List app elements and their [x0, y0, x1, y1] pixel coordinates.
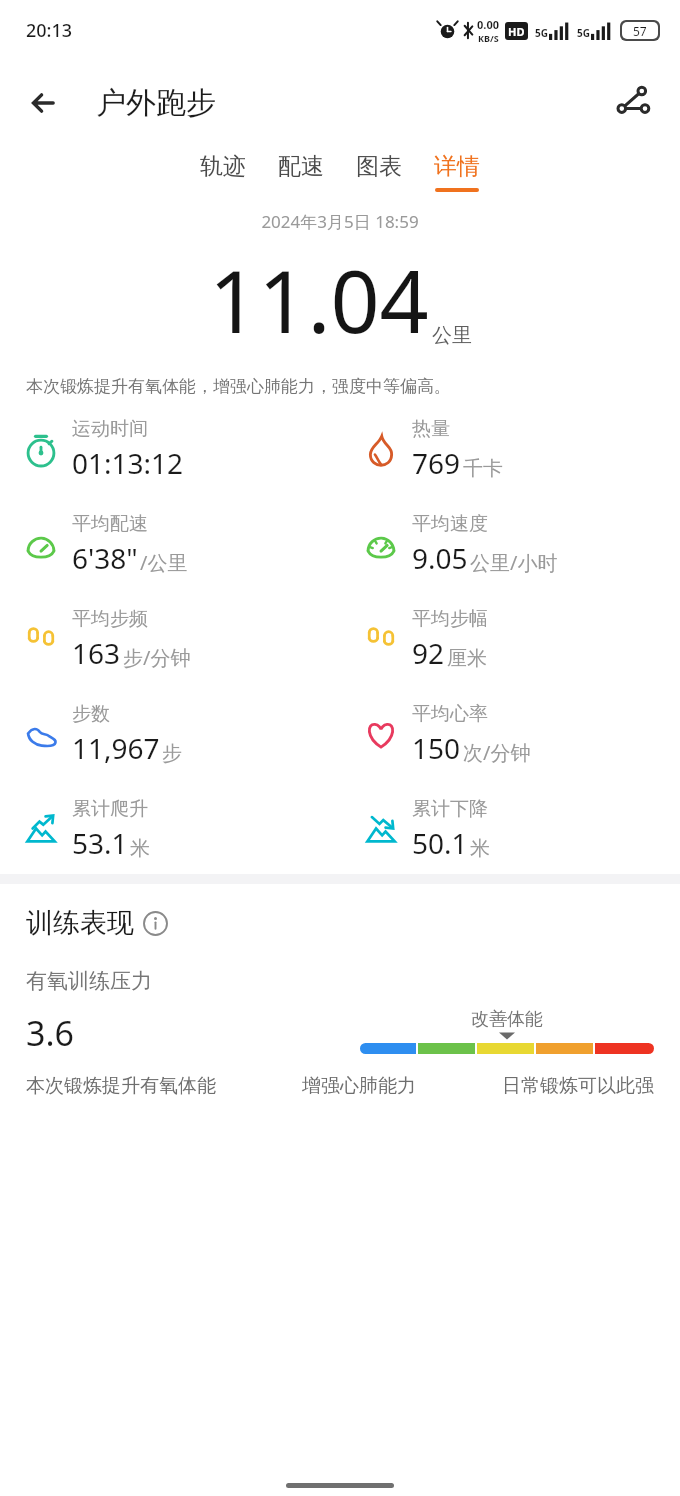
staticText: 5G [535, 26, 548, 40]
staticText: 3.6 [26, 1010, 75, 1056]
button[interactable]: 平均步频 [0, 605, 340, 674]
staticText: 热量 [412, 417, 450, 441]
button[interactable]: 轨迹 [184, 146, 262, 198]
staticText: 20:13 [26, 18, 73, 43]
button[interactable]: 详情 [418, 146, 496, 198]
staticText: 2024年3月5日 18:59 [0, 210, 680, 233]
button[interactable]: 步数 [0, 700, 340, 769]
button[interactable]: 累计下降 [340, 795, 680, 864]
staticText: 千卡 [463, 456, 503, 481]
button[interactable]: 累计爬升 [0, 795, 340, 864]
staticText: 769 [412, 444, 461, 482]
staticText: 53.1 [72, 824, 128, 862]
staticText: 厘米 [447, 646, 487, 671]
staticText: 步数 [72, 702, 110, 726]
staticText: 步 [162, 741, 182, 766]
staticText: 次/分钟 [463, 739, 531, 766]
staticText: 累计爬升 [72, 797, 148, 821]
staticText: 增强心肺能力 [302, 1074, 416, 1098]
staticText: 6'38" [72, 539, 138, 577]
staticText: 92 [412, 634, 445, 672]
button[interactable]: 训练表现 [26, 906, 168, 940]
staticText: 运动时间 [72, 417, 148, 441]
staticText: /公里 [140, 549, 188, 576]
staticText: 57 [633, 23, 647, 39]
staticText: 150 [412, 729, 461, 767]
staticText: 公里 [432, 323, 472, 348]
staticText: 01:13:12 [72, 444, 184, 482]
staticText: 0.00 [477, 17, 499, 32]
staticText: HD [508, 24, 525, 39]
staticText: 50.1 [412, 824, 468, 862]
button[interactable]: 平均步幅 [340, 605, 680, 674]
staticText: 平均步频 [72, 607, 148, 631]
staticText: 累计下降 [412, 797, 488, 821]
staticText: 平均速度 [412, 512, 488, 536]
staticText: 公里/小时 [470, 549, 558, 576]
button[interactable]: 配速 [262, 146, 340, 198]
staticText: 11,967 [72, 729, 160, 767]
staticText: 训练表现 [26, 906, 134, 940]
staticText: KB/S [478, 32, 499, 44]
button[interactable]: 平均心率 [340, 700, 680, 769]
staticText: 轨迹 [200, 152, 246, 181]
staticText: 户外跑步 [96, 84, 216, 122]
staticText: 本次锻炼提升有氧体能，增强心肺能力，强度中等偏高。 [26, 376, 654, 397]
staticText: 11.04 [209, 241, 429, 358]
staticText: 9.05 [412, 539, 468, 577]
staticText: 米 [130, 836, 150, 861]
other: 说明 [143, 911, 168, 936]
staticText: 米 [470, 836, 490, 861]
staticText: 平均心率 [412, 702, 488, 726]
staticText: 平均步幅 [412, 607, 488, 631]
staticText: 日常锻炼可以此强 [502, 1074, 654, 1098]
staticText: 配速 [278, 152, 324, 181]
button[interactable]: 返回 [14, 72, 76, 134]
button[interactable]: 热量 [340, 415, 680, 484]
button[interactable]: 分享 [602, 72, 664, 134]
staticText: 步/分钟 [123, 644, 191, 671]
button[interactable]: 图表 [340, 146, 418, 198]
staticText: 改善体能 [471, 1008, 543, 1031]
staticText: 有氧训练压力 [26, 968, 152, 994]
staticText: 平均配速 [72, 512, 148, 536]
button[interactable]: 平均配速 [0, 510, 340, 579]
staticText: 本次锻炼提升有氧体能 [26, 1074, 216, 1098]
button[interactable]: 运动时间 [0, 415, 340, 484]
staticText: 图表 [356, 152, 402, 181]
staticText: 163 [72, 634, 121, 672]
button[interactable]: 平均速度 [340, 510, 680, 579]
staticText: 详情 [434, 152, 480, 181]
staticText: 5G [577, 26, 590, 40]
